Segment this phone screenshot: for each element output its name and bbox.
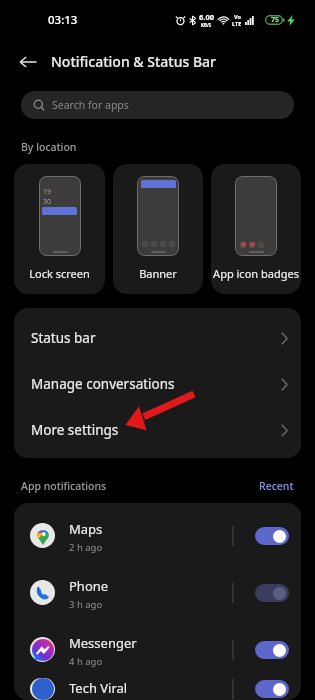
button[interactable]: Messenger [14, 621, 301, 678]
button[interactable]: Maps [14, 507, 301, 564]
staticText: 3 h ago [69, 598, 103, 611]
staticText: 2 h ago [69, 541, 103, 554]
staticText: Notification & Status Bar [51, 52, 217, 71]
staticText: Manage conversations [31, 375, 175, 393]
button[interactable]: Notifications off [255, 584, 289, 602]
button[interactable]: Manage conversations [14, 361, 301, 407]
staticText: By location [21, 140, 77, 154]
staticText: 4 h ago [69, 655, 103, 668]
staticText: 75 [271, 15, 280, 25]
button[interactable]: Phone [14, 564, 301, 621]
button[interactable]: Back [13, 47, 43, 77]
button[interactable]: Tech Viral [14, 678, 301, 700]
staticText: Status bar [31, 329, 96, 347]
staticText: Maps [69, 520, 103, 538]
staticText: 19 [43, 187, 52, 197]
button[interactable]: App icon badges [211, 164, 301, 294]
staticText: More settings [31, 421, 119, 439]
button[interactable]: 19 [14, 164, 105, 294]
staticText: 03:13 [48, 12, 78, 28]
button[interactable]: Notifications on [255, 527, 289, 545]
button[interactable]: Notifications on [255, 680, 289, 698]
staticText: Lock screen [29, 266, 90, 281]
button[interactable]: Notifications on [255, 641, 289, 659]
staticText: Tech Viral [69, 679, 128, 697]
button[interactable]: Banner [113, 164, 203, 294]
staticText: LTE [232, 20, 242, 27]
button[interactable]: Status bar [14, 315, 301, 361]
staticText: Recent [259, 479, 294, 493]
staticText: 6.00 [199, 12, 214, 22]
button[interactable]: More settings [14, 407, 301, 453]
staticText: Vo [234, 13, 241, 20]
staticText: Search for apps [52, 98, 129, 112]
staticText: Phone [69, 577, 109, 595]
staticText: Messenger [69, 634, 137, 652]
button[interactable]: Recent [259, 479, 294, 493]
button[interactable]: Search for apps [21, 91, 294, 119]
staticText: Banner [139, 266, 177, 281]
staticText: App icon badges [213, 266, 299, 281]
staticText: App notifications [21, 479, 107, 493]
staticText: 30 [43, 197, 52, 207]
staticText: KB/S [201, 22, 212, 28]
